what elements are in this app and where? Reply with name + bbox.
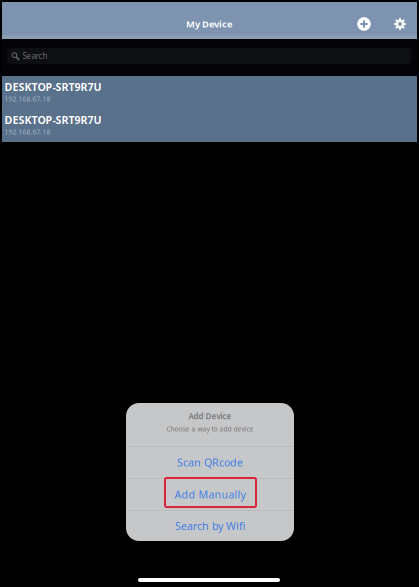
staticText: DESKTOP-SRT9R7U <box>4 80 101 94</box>
button[interactable]: Add device <box>351 11 377 37</box>
button[interactable]: Scan QRcode <box>126 447 294 478</box>
staticText: DESKTOP-SRT9R7U <box>4 113 101 127</box>
staticText: Add Manually <box>174 487 245 501</box>
staticText: 192.168.67.18 <box>4 127 50 136</box>
staticText: Search by Wifi <box>175 519 245 533</box>
button[interactable]: Settings <box>387 11 413 37</box>
button[interactable]: Search by Wifi <box>126 511 294 541</box>
staticText: 192.168.67.18 <box>4 94 50 103</box>
staticText: My Device <box>186 18 233 30</box>
button[interactable]: Search <box>7 48 411 64</box>
button[interactable]: DESKTOP-SRT9R7U <box>2 76 417 109</box>
staticText: Scan QRcode <box>177 455 243 469</box>
button[interactable]: Add Manually <box>126 479 294 510</box>
staticText: Choose a way to add device <box>166 424 253 433</box>
staticText: Search <box>23 51 48 61</box>
staticText: Add Device <box>188 411 231 421</box>
button[interactable]: DESKTOP-SRT9R7U <box>2 109 417 142</box>
